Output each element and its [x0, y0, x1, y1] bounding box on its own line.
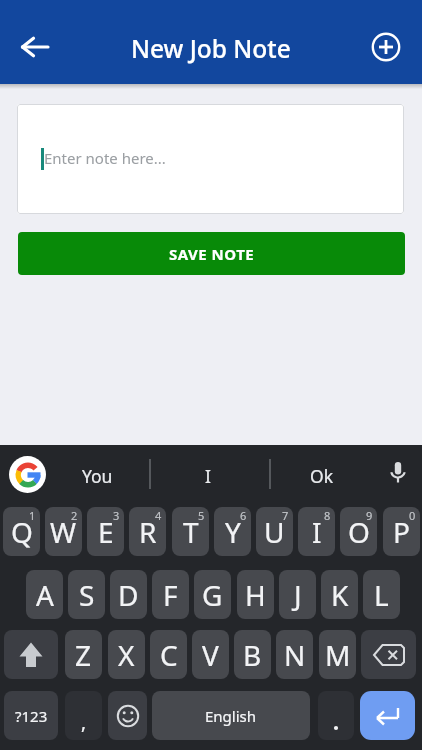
staticText: V	[202, 636, 219, 674]
button[interactable]: D	[110, 570, 147, 619]
staticText: A	[36, 576, 54, 614]
button[interactable]: A	[26, 570, 63, 619]
button[interactable]: V	[192, 630, 229, 679]
button[interactable]: T	[172, 507, 209, 556]
staticText: 4	[155, 508, 162, 523]
staticText: J	[294, 576, 302, 614]
button[interactable]	[376, 452, 420, 496]
button[interactable]: P	[383, 507, 420, 556]
button[interactable]	[13, 25, 57, 69]
button[interactable]: Q	[3, 507, 40, 556]
staticText: 7	[282, 508, 289, 523]
staticText: Z	[75, 636, 92, 674]
staticText: L	[374, 576, 389, 614]
staticText: Enter note here...	[44, 148, 166, 168]
button[interactable]: N	[276, 630, 313, 679]
staticText: English	[205, 706, 257, 726]
button[interactable]: I	[205, 464, 211, 488]
staticText: F	[163, 576, 178, 614]
staticText: 6	[240, 508, 247, 523]
button[interactable]: G	[194, 570, 231, 619]
staticText: O	[348, 513, 370, 551]
button[interactable]: F	[152, 570, 189, 619]
staticText: C	[160, 636, 178, 674]
button[interactable]: C	[150, 630, 187, 679]
staticText: 8	[324, 508, 331, 523]
button[interactable]: E	[87, 507, 124, 556]
button[interactable]: B	[234, 630, 271, 679]
staticText: M	[325, 636, 351, 674]
staticText: E	[98, 513, 114, 551]
button[interactable]	[364, 25, 408, 69]
button[interactable]: SAVE NOTE	[18, 232, 405, 275]
staticText: I	[312, 513, 322, 551]
staticText: B	[243, 636, 262, 674]
button[interactable]	[9, 456, 46, 493]
staticText: U	[264, 513, 285, 551]
staticText: R	[139, 513, 157, 551]
button[interactable]: O	[340, 507, 377, 556]
button[interactable]: English	[152, 691, 310, 740]
button[interactable]: You	[82, 464, 113, 488]
staticText: 3	[113, 508, 120, 523]
button[interactable]: Y	[214, 507, 251, 556]
staticText: H	[245, 576, 266, 614]
button[interactable]	[360, 691, 415, 740]
button[interactable]: I	[298, 507, 335, 556]
staticText: 9	[366, 508, 373, 523]
button[interactable]: J	[279, 570, 316, 619]
staticText: 1	[29, 508, 36, 523]
button[interactable]: X	[108, 630, 145, 679]
button[interactable]	[361, 630, 416, 679]
staticText: X	[118, 636, 135, 674]
button[interactable]: ?123	[4, 691, 58, 740]
staticText: Q	[11, 513, 33, 551]
staticText: 2	[71, 508, 78, 523]
button[interactable]	[4, 630, 58, 679]
button[interactable]: S	[68, 570, 105, 619]
staticText: P	[393, 513, 410, 551]
staticText: ,	[81, 709, 87, 735]
staticText: S	[79, 576, 95, 614]
staticText: Y	[225, 513, 241, 551]
staticText: T	[183, 513, 199, 551]
button[interactable]	[318, 691, 354, 740]
staticText: New Job Note	[131, 32, 291, 65]
staticText: ?123	[15, 706, 48, 726]
staticText: 0	[409, 508, 416, 523]
button[interactable]: H	[237, 570, 274, 619]
button[interactable]: L	[363, 570, 400, 619]
button[interactable]: Ok	[310, 464, 334, 488]
button[interactable]: Z	[65, 630, 102, 679]
button[interactable]: ,	[65, 691, 102, 740]
staticText: G	[202, 576, 223, 614]
staticText: W	[50, 513, 77, 551]
staticText: 5	[198, 508, 205, 523]
button[interactable]	[108, 691, 147, 740]
button[interactable]: Enter note here...	[17, 104, 404, 214]
staticText: D	[118, 576, 139, 614]
staticText: SAVE NOTE	[169, 244, 255, 264]
button[interactable]: K	[321, 570, 358, 619]
staticText: N	[284, 636, 306, 674]
button[interactable]: U	[256, 507, 293, 556]
button[interactable]: M	[319, 630, 356, 679]
button[interactable]: R	[129, 507, 166, 556]
button[interactable]: W	[45, 507, 82, 556]
staticText: K	[331, 576, 349, 614]
